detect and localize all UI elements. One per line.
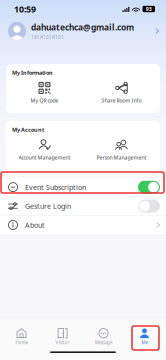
staticText: My Information (12, 69, 53, 76)
button[interactable]: Me (124, 328, 165, 345)
button[interactable]: dahuatechca@gmail.com (0, 18, 166, 44)
button[interactable]: Home (1, 328, 42, 345)
button[interactable]: About (0, 216, 166, 234)
button[interactable]: Message (83, 328, 124, 345)
staticText: About (25, 220, 45, 230)
button[interactable]: Share Room Info (83, 79, 160, 106)
button[interactable]: Account Management (6, 136, 83, 163)
staticText: Home (15, 340, 27, 346)
staticText: Me (141, 340, 147, 346)
staticText: 1#1#101#101 (31, 34, 64, 40)
staticText: Event Subscription (25, 182, 86, 192)
button[interactable]: Visitor (42, 328, 83, 345)
button[interactable]: Person Management (83, 136, 160, 163)
button[interactable]: Gesture Login (0, 197, 166, 215)
staticText: 10:59 (14, 3, 36, 15)
button[interactable]: My QR code (6, 79, 83, 106)
staticText: Person Management (96, 154, 146, 161)
staticText: Share Room Info (101, 97, 141, 104)
staticText: dahuatechca@gmail.com (31, 22, 134, 33)
staticText: Account Management (18, 154, 70, 161)
staticText: My QR code (30, 97, 58, 104)
staticText: Visitor (55, 340, 69, 346)
staticText: My Account (12, 126, 44, 133)
button[interactable]: Event Subscription (0, 178, 166, 196)
staticText: 93 (146, 5, 152, 13)
staticText: Message (95, 340, 112, 346)
staticText: Gesture Login (25, 201, 71, 211)
